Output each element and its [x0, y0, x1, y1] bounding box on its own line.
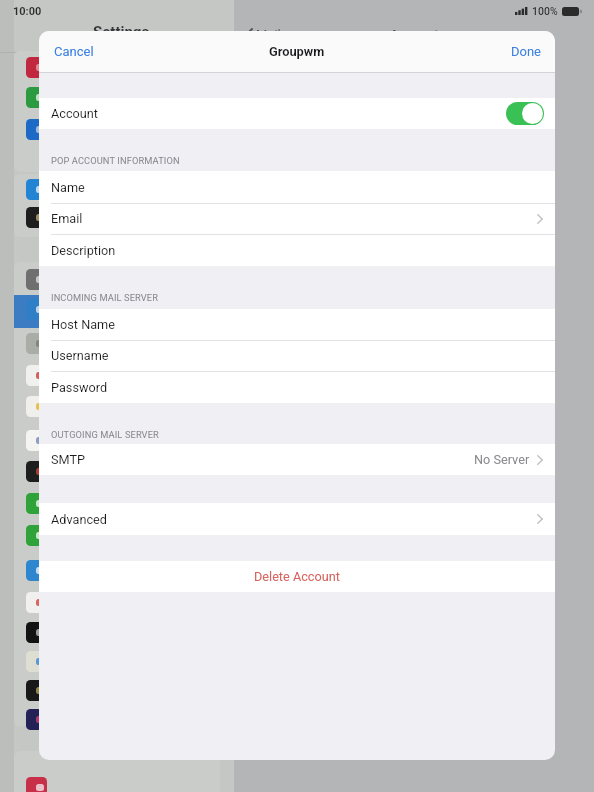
staticText: Account	[51, 106, 98, 121]
staticText: 10:00	[13, 5, 42, 18]
staticText: Settings	[93, 23, 150, 41]
staticText: Username	[51, 348, 109, 363]
staticText: Cancel	[54, 44, 94, 59]
button[interactable]: Account	[39, 98, 555, 129]
staticText: Description	[51, 243, 116, 258]
staticText: Mail	[256, 27, 281, 42]
staticText: No Server	[474, 452, 530, 467]
button[interactable]: Account toggle	[506, 102, 544, 125]
button[interactable]: Username	[39, 340, 555, 371]
button[interactable]: Host Name	[39, 309, 555, 340]
button[interactable]: Cancel	[39, 35, 109, 68]
staticText: Name	[51, 180, 85, 195]
staticText: Done	[511, 44, 542, 59]
button[interactable]: Done	[498, 35, 555, 68]
staticText: Accounts	[390, 27, 446, 42]
button[interactable]: Password	[39, 371, 555, 403]
staticText: Advanced	[51, 512, 107, 527]
button[interactable]: Name	[39, 171, 555, 203]
button[interactable]: Email	[39, 203, 555, 234]
staticText: Groupwm	[269, 44, 325, 59]
staticText: SMTP	[51, 452, 86, 467]
button[interactable]: Advanced	[39, 503, 555, 535]
staticText: Host Name	[51, 317, 115, 332]
button[interactable]: Description	[39, 234, 555, 266]
staticText: Password	[51, 380, 108, 395]
staticText: 100%	[532, 5, 558, 17]
button[interactable]: Delete Account	[39, 561, 555, 592]
staticText: OUTGOING MAIL SERVER	[51, 429, 159, 440]
staticText: Delete Account	[254, 569, 340, 584]
button[interactable]: SMTP	[39, 444, 555, 475]
staticText: POP ACCOUNT INFORMATION	[51, 155, 180, 166]
staticText: Email	[51, 211, 83, 226]
staticText: INCOMING MAIL SERVER	[51, 292, 159, 303]
